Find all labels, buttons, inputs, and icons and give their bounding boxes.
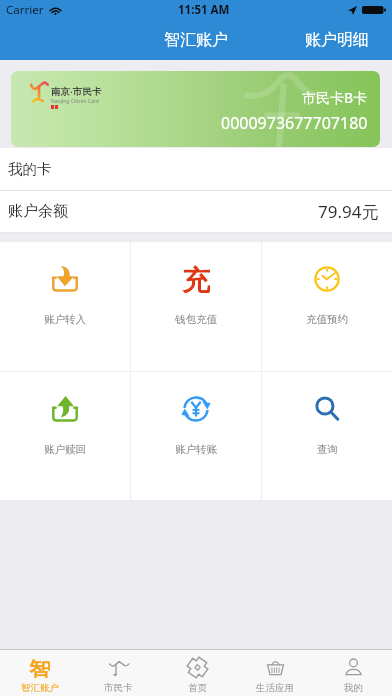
staticText: 我的 <box>344 682 363 694</box>
staticText: 我的卡 <box>8 160 52 178</box>
staticText: 11:51 AM <box>178 2 230 18</box>
button[interactable]: 账户余额 <box>0 190 392 233</box>
button[interactable]: 账户赎回 <box>0 372 130 456</box>
button[interactable]: 市民卡 <box>79 650 158 694</box>
staticText: 首页 <box>188 682 207 694</box>
button[interactable]: 生活应用 <box>236 650 314 694</box>
button[interactable]: 账户转账 <box>131 372 261 456</box>
button[interactable]: 充值预约 <box>262 242 392 326</box>
button[interactable]: 首页 <box>158 650 236 694</box>
staticText: 充 <box>182 263 210 293</box>
staticText: Carrier <box>6 2 44 18</box>
staticText: 南京·市民卡 <box>51 85 102 98</box>
button[interactable]: 我的卡 <box>0 148 392 190</box>
staticText: 生活应用 <box>256 682 294 694</box>
staticText: 智汇账户 <box>164 30 228 50</box>
staticText: 市民卡 <box>104 682 133 694</box>
staticText: 智汇账户 <box>21 682 59 694</box>
button[interactable]: 账户明细 <box>295 24 379 56</box>
staticText: 查询 <box>317 443 338 456</box>
staticText: 账户转入 <box>44 313 86 326</box>
button[interactable]: 我的 <box>314 650 392 694</box>
staticText: 账户余额 <box>8 202 68 221</box>
staticText: Nanjing Citizen Card <box>51 98 99 105</box>
button[interactable]: 查询 <box>262 372 392 456</box>
staticText: 0000973677707180 <box>221 112 368 134</box>
staticText: 账户明细 <box>305 30 369 50</box>
staticText: 充值预约 <box>306 313 348 326</box>
button[interactable]: 账户转入 <box>0 242 130 326</box>
staticText: 79.94元 <box>318 200 379 223</box>
staticText: 市民卡B卡 <box>302 88 368 107</box>
button[interactable]: 智汇账户 <box>154 24 238 56</box>
button[interactable]: 充 <box>131 242 261 326</box>
staticText: 钱包充值 <box>175 313 217 326</box>
staticText: 账户转账 <box>175 443 217 456</box>
button[interactable]: 智 <box>0 650 79 694</box>
staticText: 账户赎回 <box>44 443 86 456</box>
button[interactable]: 南京·市民卡 <box>11 71 380 147</box>
staticText: 智 <box>29 657 50 678</box>
